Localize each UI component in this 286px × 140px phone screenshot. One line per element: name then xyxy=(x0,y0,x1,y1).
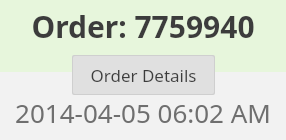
staticText: 2014-04-05 06:02 AM xyxy=(15,95,271,130)
button[interactable]: Order: 7759940 xyxy=(0,0,286,52)
staticText: Order: 7759940 xyxy=(31,6,255,47)
staticText: Order Details xyxy=(90,64,197,86)
button[interactable]: 2014-04-05 06:02 AM xyxy=(0,92,286,132)
button[interactable]: Order Details xyxy=(73,56,214,94)
